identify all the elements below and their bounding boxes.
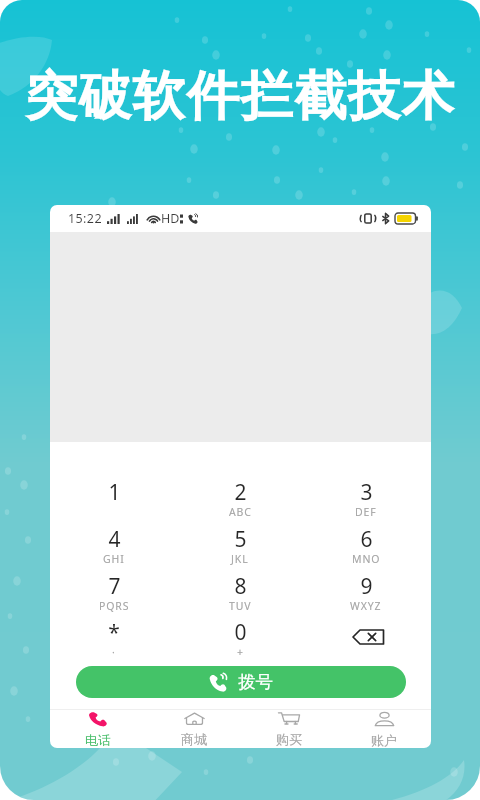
staticText: 账户 xyxy=(371,732,397,748)
staticText: 2 xyxy=(234,478,247,507)
button[interactable]: 4 xyxy=(72,523,156,567)
staticText: 1 xyxy=(108,478,121,507)
staticText: TUV xyxy=(229,599,252,613)
staticText: 7 xyxy=(108,572,121,601)
button[interactable]: 购买 xyxy=(241,710,336,748)
staticText: 6 xyxy=(360,525,373,554)
staticText: 商城 xyxy=(181,731,207,747)
staticText: 5 xyxy=(234,525,247,554)
staticText: * xyxy=(108,618,120,647)
button[interactable]: 商城 xyxy=(146,710,241,748)
staticText: JKL xyxy=(231,552,249,566)
button[interactable]: 9 xyxy=(324,570,408,614)
staticText: PQRS xyxy=(99,599,130,613)
button[interactable]: 0 xyxy=(198,616,282,660)
staticText: 15:22 xyxy=(68,210,102,227)
button[interactable]: 电话 xyxy=(50,710,146,748)
staticText: 0 xyxy=(234,618,247,647)
staticText: ABC xyxy=(229,505,252,519)
button[interactable]: 8 xyxy=(198,570,282,614)
staticText: 4 xyxy=(108,525,121,554)
staticText: 购买 xyxy=(276,731,302,747)
button[interactable]: 6 xyxy=(324,523,408,567)
button[interactable]: 拨号 xyxy=(76,666,406,698)
staticText: MNO xyxy=(352,552,381,566)
button[interactable]: * xyxy=(72,616,156,660)
staticText: 拨号 xyxy=(238,671,273,693)
button[interactable]: 7 xyxy=(72,570,156,614)
staticText: DEF xyxy=(355,505,377,519)
staticText: GHI xyxy=(103,552,125,566)
staticText: WXYZ xyxy=(350,599,382,613)
button[interactable]: 1 xyxy=(72,476,156,520)
staticText: + xyxy=(237,645,244,659)
staticText: HD xyxy=(161,210,180,227)
button[interactable]: 2 xyxy=(198,476,282,520)
staticText: · xyxy=(112,645,116,659)
staticText: 8 xyxy=(234,572,247,601)
button[interactable]: 账户 xyxy=(336,710,431,748)
staticText: 突破软件拦截技术 xyxy=(25,63,456,129)
button[interactable]: Delete xyxy=(324,616,408,660)
staticText: 电话 xyxy=(85,732,111,748)
staticText: 9 xyxy=(360,572,373,601)
button[interactable]: 5 xyxy=(198,523,282,567)
staticText: 3 xyxy=(360,478,373,507)
button[interactable]: 3 xyxy=(324,476,408,520)
